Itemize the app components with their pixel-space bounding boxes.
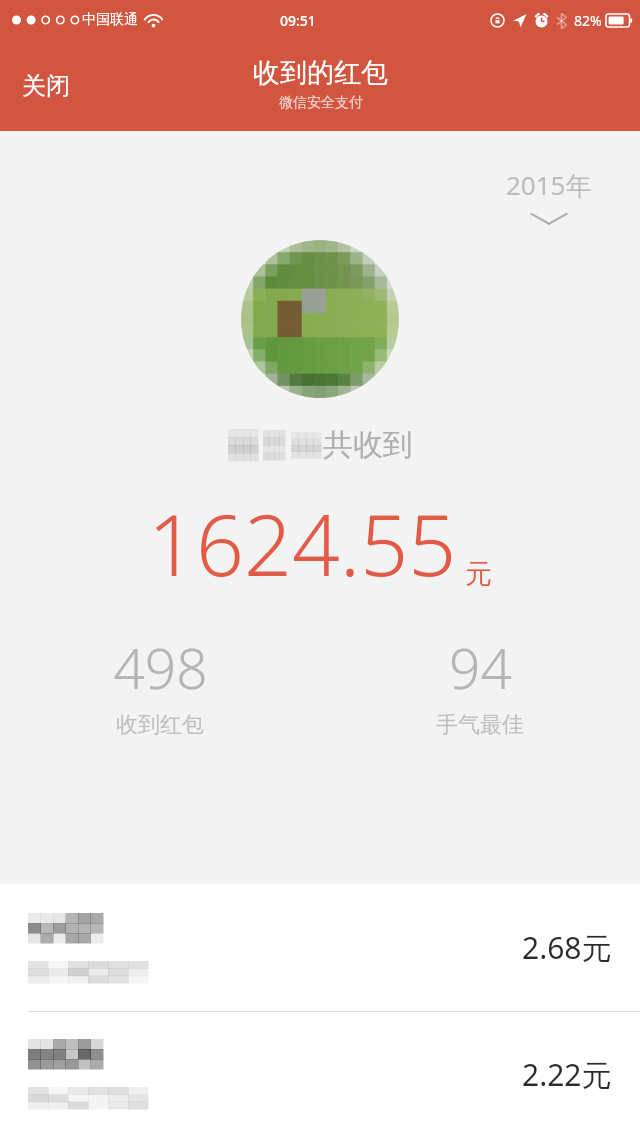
button[interactable]: 2.68元 — [0, 884, 640, 1011]
staticText: 498 — [113, 630, 208, 705]
staticText: 1624.55 — [148, 486, 457, 600]
staticText: 94 — [449, 630, 512, 705]
staticText: 元 — [465, 557, 492, 591]
staticText: 2.22元 — [522, 1054, 612, 1095]
staticText: 手气最佳 — [436, 711, 524, 739]
button[interactable]: 关闭 — [0, 61, 90, 111]
staticText: 共收到 — [323, 426, 413, 464]
staticText: 收到红包 — [116, 711, 204, 739]
button[interactable]: 2.22元 — [0, 1012, 640, 1136]
staticText: 中国联通 — [82, 11, 138, 29]
button[interactable]: 94 — [320, 630, 640, 739]
staticText: 2.68元 — [522, 927, 612, 968]
staticText: 82% — [574, 11, 602, 30]
staticText: 09:51 — [280, 11, 316, 30]
staticText: 关闭 — [22, 71, 70, 101]
staticText: 2015年 — [506, 167, 592, 203]
button[interactable] — [241, 240, 399, 398]
staticText: 微信安全支付 — [279, 94, 363, 112]
button[interactable]: 498 — [0, 630, 320, 739]
staticText: 收到的红包 — [253, 56, 388, 90]
button[interactable]: 2015年 — [506, 167, 592, 227]
